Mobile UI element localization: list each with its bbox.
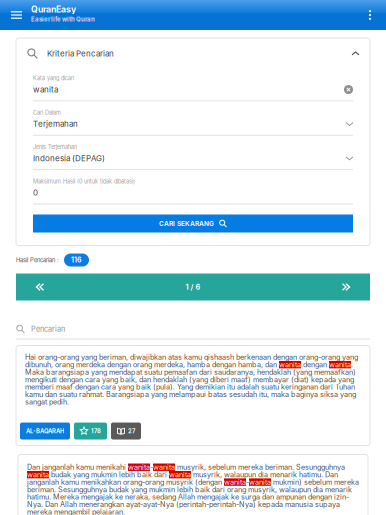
staticText: Kata yang dicari bbox=[33, 75, 74, 82]
button[interactable]: Kriteria Pencarian bbox=[16, 38, 370, 75]
staticText: Hasil Pencarian : bbox=[16, 256, 59, 264]
staticText: 1 / 6 bbox=[185, 282, 200, 291]
staticText: Hai orang-orang yang beriman, diwajibkan… bbox=[25, 353, 358, 405]
staticText: 116 bbox=[71, 256, 82, 264]
staticText: Kriteria Pencarian bbox=[47, 49, 114, 58]
staticText: CARI SEKARANG bbox=[159, 220, 214, 227]
button[interactable]: 178 bbox=[74, 422, 107, 439]
staticText: 178 bbox=[91, 427, 101, 435]
staticText: AL-BAQARAH bbox=[26, 427, 64, 435]
staticText: Jenis Terjemahan bbox=[33, 144, 77, 150]
staticText: Pencarian bbox=[31, 325, 65, 333]
staticText: Maksimum Hasil (0 untuk tidak dibatasi) bbox=[33, 178, 135, 185]
button[interactable]: CARI SEKARANG bbox=[33, 214, 353, 232]
button[interactable]: Menu bbox=[3, 2, 30, 28]
button[interactable]: Previous page bbox=[16, 273, 64, 300]
staticText: wanita bbox=[33, 85, 58, 94]
staticText: QuranEasy bbox=[31, 4, 76, 14]
staticText: 0 bbox=[33, 188, 38, 197]
button[interactable]: More options bbox=[357, 2, 383, 28]
staticText: Indonesia (DEPAG) bbox=[33, 153, 105, 163]
staticText: Dan janganlah kamu menikahi wanita-wanit… bbox=[27, 463, 359, 515]
staticText: 27 bbox=[128, 427, 135, 435]
button[interactable]: Next page bbox=[322, 273, 370, 300]
staticText: Easier life with Quran bbox=[31, 15, 95, 23]
staticText: Terjemahan bbox=[33, 119, 78, 129]
button[interactable]: 27 bbox=[111, 422, 141, 439]
staticText: Cari Dalam bbox=[33, 109, 61, 116]
button[interactable]: AL-BAQARAH bbox=[20, 422, 70, 439]
